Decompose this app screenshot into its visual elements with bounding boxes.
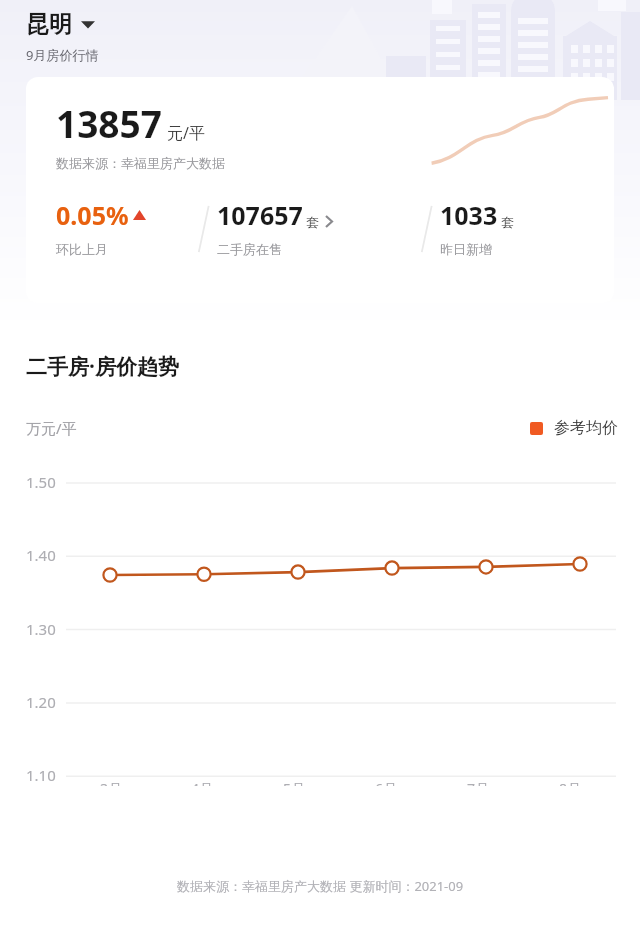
staticText: 1033 — [440, 198, 498, 232]
staticText: 13857 — [56, 98, 162, 148]
button[interactable]: 107657 — [217, 198, 414, 257]
other: 切换城市 — [81, 20, 95, 29]
staticText: 套 — [501, 214, 514, 230]
staticText: 1.10 — [26, 765, 56, 785]
staticText: 环比上月 — [56, 241, 108, 257]
staticText: 0.05% — [56, 198, 129, 232]
staticText: 元/平 — [167, 122, 205, 144]
staticText: 1.50 — [26, 472, 56, 492]
staticText: 二手房在售 — [217, 241, 282, 257]
staticText: 7月 — [467, 779, 490, 786]
staticText: 数据来源：幸福里房产大数据 — [56, 155, 225, 171]
button[interactable]: 参考均价 — [530, 418, 618, 438]
staticText: 数据来源：幸福里房产大数据 更新时间：2021-09 — [177, 877, 464, 895]
staticText: 5月 — [283, 779, 306, 786]
staticText: 昨日新增 — [440, 241, 492, 257]
button[interactable]: 昆明 — [26, 10, 95, 39]
button[interactable]: 13857 — [26, 77, 614, 303]
staticText: 1.30 — [26, 619, 56, 639]
staticText: 4月 — [191, 779, 214, 786]
staticText: 参考均价 — [554, 418, 618, 438]
staticText: 107657 — [217, 198, 303, 232]
staticText: 二手房·房价趋势 — [26, 352, 179, 381]
button[interactable]: 1033 — [440, 198, 598, 257]
staticText: 1.20 — [26, 692, 56, 712]
staticText: 6月 — [375, 779, 398, 786]
staticText: 9月房价行情 — [26, 46, 99, 64]
staticText: 万元/平 — [26, 418, 77, 438]
staticText: 3月 — [100, 779, 123, 786]
staticText: 1.40 — [26, 545, 56, 565]
staticText: 8月 — [559, 779, 582, 786]
staticText: 昆明 — [26, 10, 72, 39]
staticText: 套 — [306, 214, 319, 230]
button[interactable]: 0.05% — [56, 198, 191, 257]
